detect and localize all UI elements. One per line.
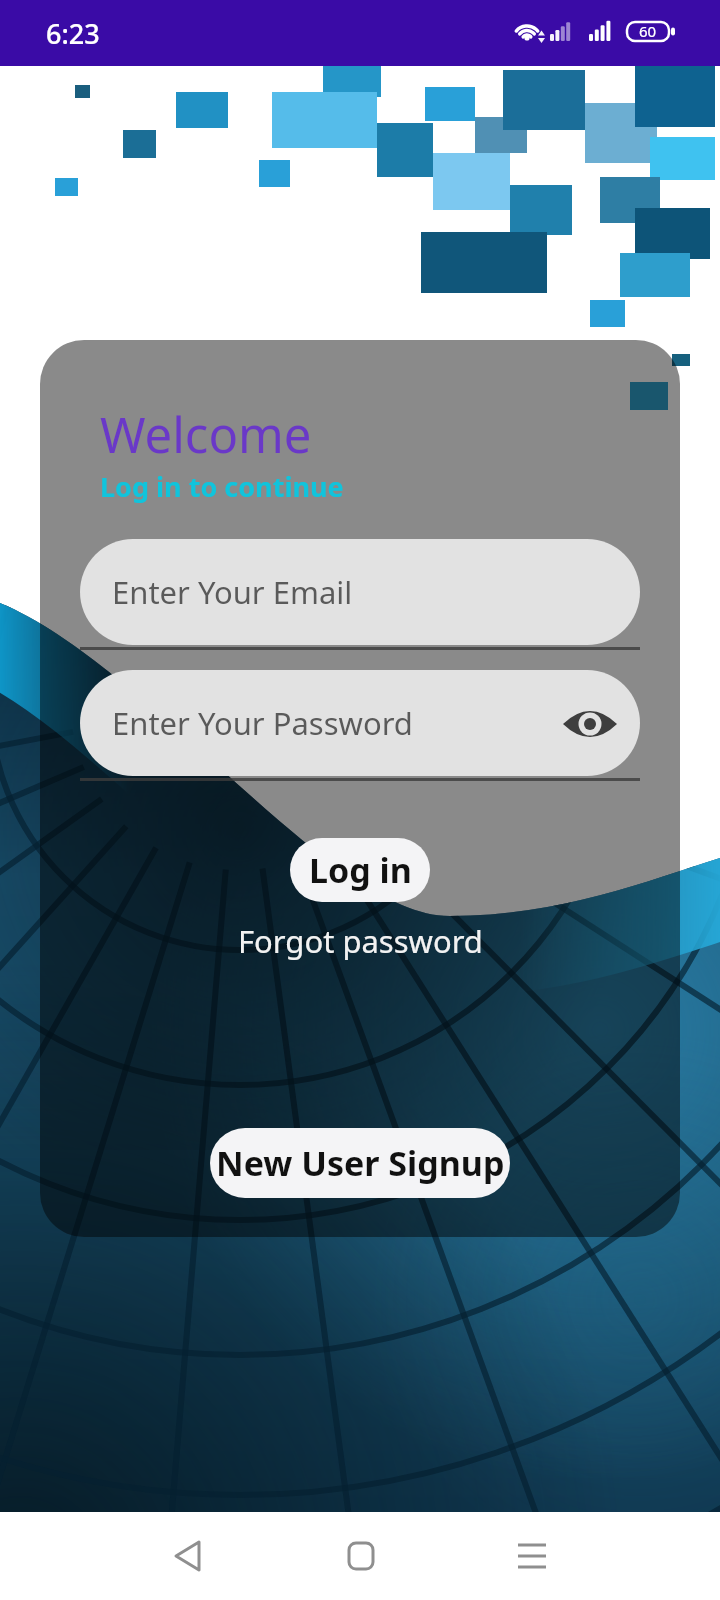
staticText: Welcome xyxy=(100,401,312,468)
button[interactable] xyxy=(331,1526,391,1586)
button[interactable] xyxy=(158,1526,218,1586)
staticText: New User Signup xyxy=(216,1140,505,1186)
staticText: Log in xyxy=(309,847,412,893)
button[interactable]: New User Signup xyxy=(210,1128,510,1198)
staticText: Log in to continue xyxy=(100,468,344,505)
staticText: Forgot password xyxy=(238,920,483,962)
button[interactable]: Enter Your Email xyxy=(80,539,640,645)
staticText: 6:23 xyxy=(46,15,100,52)
button[interactable]: Forgot password xyxy=(238,920,483,962)
staticText: Enter Your Email xyxy=(112,571,353,613)
button[interactable] xyxy=(503,1526,563,1586)
button[interactable] xyxy=(560,698,620,750)
button[interactable]: Enter Your Password xyxy=(80,670,640,776)
button[interactable]: Log in xyxy=(290,838,430,902)
staticText: Enter Your Password xyxy=(112,702,413,744)
staticText: 60 xyxy=(639,21,657,41)
